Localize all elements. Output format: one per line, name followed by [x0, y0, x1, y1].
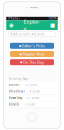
button[interactable]: ● [10, 59, 54, 65]
staticText: ■ [50, 22, 55, 28]
staticText: iPhone [8, 17, 19, 20]
staticText: ◉ [9, 22, 14, 28]
button[interactable]: #foodlover [6, 88, 58, 95]
staticText: #citylife [9, 103, 20, 106]
staticText: #foodlover [9, 90, 25, 93]
staticText: #travelday [9, 96, 22, 100]
button[interactable]: Video [48, 20, 56, 30]
staticText: · 21 posts [22, 96, 39, 100]
staticText: Popular Now [22, 51, 44, 57]
staticText: · 12 posts [20, 83, 37, 86]
staticText: · 5 posts [20, 103, 35, 106]
button[interactable]: Camera [7, 20, 15, 30]
button[interactable]: #citylife [6, 101, 58, 108]
staticText: Trending Tags [9, 77, 28, 81]
staticText: ● [20, 52, 22, 55]
button[interactable]: ● [10, 51, 54, 57]
staticText: ● [19, 44, 21, 47]
staticText: · 8 posts [25, 90, 40, 93]
staticText: Explore [23, 18, 40, 32]
button[interactable]: #sunset [6, 82, 58, 88]
staticText: Search people and posts [10, 32, 44, 36]
staticText: #sunset [9, 83, 20, 86]
button[interactable]: ● [10, 43, 54, 49]
button[interactable]: #travelday [6, 95, 58, 101]
staticText: ● [20, 61, 22, 64]
staticText: 100% [48, 17, 56, 20]
staticText: On This Day [23, 59, 44, 65]
staticText: Editor's Picks [22, 43, 45, 48]
